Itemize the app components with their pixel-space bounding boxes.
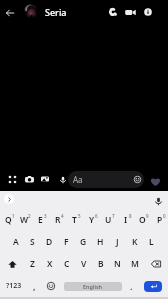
staticText: , xyxy=(33,280,36,292)
button[interactable]: C xyxy=(58,253,75,275)
button[interactable]: D xyxy=(41,231,58,253)
staticText: S xyxy=(30,236,35,248)
button[interactable]: Camera xyxy=(21,171,37,187)
staticText: C xyxy=(64,258,70,270)
staticText: A xyxy=(13,236,19,248)
button[interactable]: A xyxy=(7,231,24,253)
staticText: . xyxy=(130,280,133,292)
button[interactable]: Call xyxy=(104,3,121,20)
staticText: U xyxy=(105,214,112,226)
staticText: 3 xyxy=(44,213,47,219)
button[interactable]: Enter xyxy=(144,281,162,292)
button[interactable]: O xyxy=(134,209,151,231)
button[interactable]: Voice input xyxy=(151,194,165,208)
staticText: Q xyxy=(5,214,12,226)
button[interactable]: . xyxy=(124,275,138,297)
staticText: Z xyxy=(30,258,35,270)
staticText: 0 xyxy=(163,213,166,219)
button[interactable]: M xyxy=(126,253,143,275)
button[interactable]: Send a like xyxy=(145,171,165,191)
button[interactable]: More options xyxy=(5,172,20,187)
staticText: E xyxy=(38,214,43,226)
button[interactable]: H xyxy=(92,231,109,253)
staticText: F xyxy=(64,236,69,248)
button[interactable]: V xyxy=(75,253,92,275)
button[interactable]: W xyxy=(16,209,32,231)
staticText: 4 xyxy=(61,213,64,219)
button[interactable]: Shift xyxy=(0,253,24,275)
staticText: X xyxy=(47,258,53,270)
button[interactable]: B xyxy=(92,253,109,275)
staticText: V xyxy=(81,258,87,270)
button[interactable]: X xyxy=(41,253,58,275)
button[interactable]: Voice message xyxy=(55,172,70,187)
button[interactable]: E xyxy=(32,209,49,231)
staticText: H xyxy=(97,236,104,248)
staticText: 9 xyxy=(146,213,149,219)
staticText: Seria xyxy=(45,6,67,18)
button[interactable]: U xyxy=(100,209,117,231)
staticText: Aa xyxy=(73,174,83,185)
button[interactable]: I xyxy=(117,209,134,231)
button[interactable]: Aa xyxy=(68,171,144,188)
staticText: J xyxy=(116,236,119,248)
button[interactable]: F xyxy=(58,231,75,253)
button[interactable]: R xyxy=(49,209,66,231)
button[interactable]: G xyxy=(75,231,92,253)
button[interactable]: Z xyxy=(24,253,41,275)
button[interactable]: K xyxy=(126,231,143,253)
staticText: B xyxy=(98,258,104,270)
staticText: T xyxy=(72,214,77,226)
staticText: English xyxy=(83,283,103,290)
button[interactable]: Q xyxy=(0,209,16,231)
button[interactable]: English xyxy=(64,282,122,291)
staticText: Y xyxy=(89,214,95,226)
button[interactable]: , xyxy=(27,275,41,297)
button[interactable]: T xyxy=(66,209,83,231)
button[interactable]: Y xyxy=(83,209,100,231)
staticText: O xyxy=(139,214,146,226)
staticText: N xyxy=(114,258,121,270)
button[interactable]: Back xyxy=(1,4,18,21)
button[interactable]: Video call xyxy=(121,3,139,21)
staticText: I xyxy=(124,214,128,226)
button[interactable]: J xyxy=(109,231,126,253)
button[interactable]: Expand keyboard toolbar xyxy=(4,194,14,204)
staticText: 1 xyxy=(12,213,15,219)
button[interactable]: Gallery xyxy=(37,171,53,187)
button[interactable]: Emoji xyxy=(41,275,61,297)
button[interactable]: S xyxy=(24,231,41,253)
staticText: 5 xyxy=(78,213,81,219)
staticText: 8 xyxy=(129,213,132,219)
button[interactable]: ?123 xyxy=(0,275,27,297)
staticText: G xyxy=(80,236,87,248)
staticText: P xyxy=(157,214,163,226)
staticText: ?123 xyxy=(6,281,22,291)
staticText: K xyxy=(132,236,138,248)
staticText: W xyxy=(20,214,29,226)
button[interactable]: P xyxy=(151,209,168,231)
staticText: 7 xyxy=(112,213,115,219)
staticText: M xyxy=(131,258,139,270)
staticText: 6 xyxy=(95,213,98,219)
button[interactable]: Backspace xyxy=(143,253,168,275)
staticText: D xyxy=(46,236,53,248)
staticText: L xyxy=(149,236,154,248)
button[interactable]: N xyxy=(109,253,126,275)
button[interactable]: L xyxy=(143,231,160,253)
staticText: R xyxy=(55,214,61,226)
staticText: 2 xyxy=(28,213,31,219)
button[interactable]: Conversation info xyxy=(139,3,156,20)
